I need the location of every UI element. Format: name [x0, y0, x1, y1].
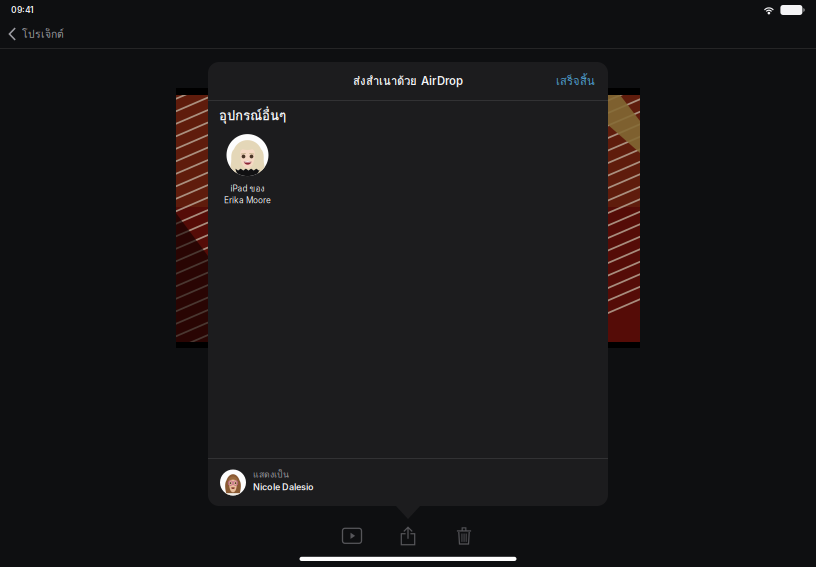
staticText: โปรเจ็กต์ — [22, 26, 64, 42]
button[interactable]: เสร็จสิ้น — [543, 68, 608, 94]
staticText: แสดงเป็น — [253, 468, 289, 481]
button[interactable]: แสดงเป็น — [208, 459, 608, 506]
staticText: iPad ของ — [230, 182, 264, 195]
staticText: ส่งสำเนาด้วย AirDrop — [353, 72, 463, 90]
button[interactable]: Share — [380, 524, 436, 548]
staticText: 09:41 — [11, 5, 34, 15]
button[interactable]: โปรเจ็กต์ — [0, 20, 74, 48]
staticText: เสร็จสิ้น — [556, 72, 595, 90]
button[interactable]: iPad ของ — [208, 126, 287, 211]
button[interactable]: Delete — [436, 524, 492, 548]
staticText: Nicole Dalesio — [253, 481, 314, 492]
staticText: Erika Moore — [224, 195, 271, 205]
staticText: อุปกรณ์อื่นๆ — [219, 105, 286, 126]
button[interactable]: Play slideshow — [324, 524, 380, 548]
